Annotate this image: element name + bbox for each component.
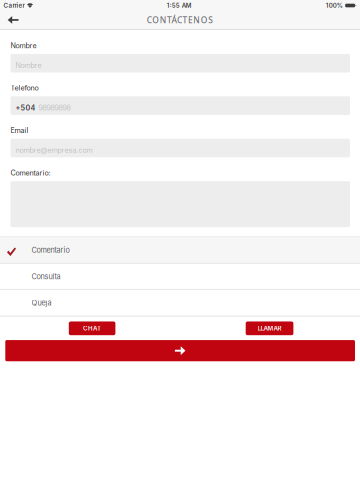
staticText: Comentario <box>31 246 69 255</box>
button[interactable]: CHAT <box>69 321 115 335</box>
staticText: Queja <box>31 298 51 307</box>
button[interactable]: Consulta <box>0 264 360 290</box>
staticText: +504 <box>15 103 35 112</box>
button[interactable]: Back <box>0 11 40 29</box>
staticText: Email <box>10 126 28 135</box>
button[interactable]: Enviar <box>5 340 355 361</box>
button[interactable]: Comentario <box>0 237 360 264</box>
button[interactable]: Queja <box>0 290 360 317</box>
staticText: Carrier <box>3 2 24 9</box>
staticText: Nombre <box>15 61 41 70</box>
staticText: Consulta <box>31 272 60 281</box>
button[interactable]: LLAMAR <box>246 321 293 335</box>
staticText: LLAMAR <box>258 325 282 332</box>
staticText: nombre@empresa.com <box>15 146 92 155</box>
staticText: CHAT <box>83 325 101 332</box>
staticText: Telefono <box>10 84 38 92</box>
staticText: 100% <box>326 2 343 9</box>
staticText: CONTÁCTENOS <box>147 14 213 26</box>
staticText: Nombre <box>10 41 36 50</box>
staticText: 98989898 <box>38 103 70 112</box>
staticText: 1:55 AM <box>167 2 192 9</box>
staticText: Comentario: <box>10 168 50 177</box>
